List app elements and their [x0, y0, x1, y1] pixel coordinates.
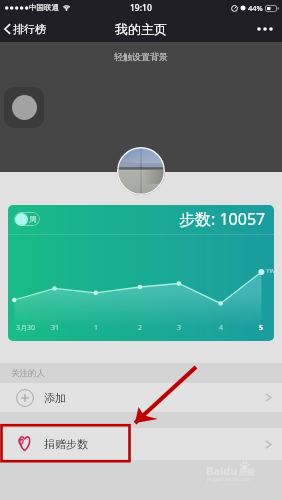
staticText: jingyan.baidu.com: [207, 476, 251, 483]
staticText: 3月30: [16, 323, 36, 333]
staticText: 1W: [266, 267, 274, 275]
button[interactable]: 排行榜: [0, 18, 54, 40]
staticText: 步数: 10057: [179, 208, 266, 230]
staticText: 1: [94, 323, 99, 333]
button[interactable]: 周: [14, 212, 40, 226]
staticText: 44%: [248, 3, 263, 13]
staticText: 2: [138, 323, 143, 333]
staticText: 经验: [239, 467, 255, 477]
staticText: Baidu: [206, 463, 238, 478]
staticText: 3: [177, 323, 182, 333]
staticText: 我的主页: [115, 21, 167, 37]
staticText: 19:10: [130, 2, 152, 14]
staticText: 轻触设置背景: [114, 51, 168, 62]
staticText: 排行榜: [13, 22, 46, 36]
button[interactable]: Profile photo: [117, 147, 165, 195]
staticText: 添加: [44, 391, 66, 405]
staticText: 31: [51, 323, 60, 333]
staticText: 4: [219, 323, 224, 333]
staticText: 关注的人: [11, 368, 45, 379]
button[interactable]: 周: [8, 205, 274, 341]
button[interactable]: More options: [248, 19, 282, 39]
button[interactable]: Add photo: [4, 87, 44, 128]
staticText: 5: [259, 323, 264, 333]
button[interactable]: 捐赠步数: [0, 428, 282, 460]
button[interactable]: 添加: [0, 383, 282, 412]
button[interactable]: 轻触设置背景: [0, 42, 282, 172]
staticText: 中国联通: [29, 3, 59, 12]
staticText: 捐赠步数: [44, 437, 88, 451]
staticText: 周: [29, 214, 37, 224]
